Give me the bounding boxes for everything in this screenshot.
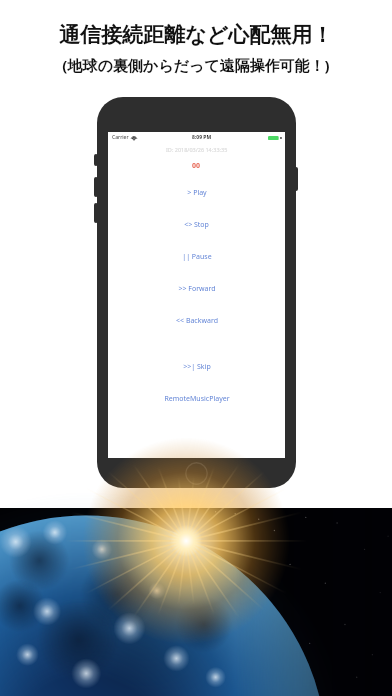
staticText: ID: 2018/03/26 14:33:35 xyxy=(166,146,228,153)
staticText: >> Forward xyxy=(178,284,216,294)
button[interactable]: << Backward xyxy=(108,314,285,328)
button[interactable]: >> Forward xyxy=(108,282,285,296)
staticText: >>| Skip xyxy=(183,362,211,372)
staticText: 通信接続距離など心配無用！ xyxy=(59,22,333,48)
staticText: RemoteMusicPlayer xyxy=(164,394,230,404)
staticText: Carrier xyxy=(112,134,129,141)
staticText: <> Stop xyxy=(184,220,209,230)
staticText: 00 xyxy=(192,161,201,171)
staticText: || Pause xyxy=(182,252,212,262)
staticText: (地球の裏側からだって遠隔操作可能！) xyxy=(62,55,330,75)
button[interactable]: <> Stop xyxy=(108,218,285,232)
staticText: 8:09 PM xyxy=(192,134,212,141)
button[interactable]: Home xyxy=(185,462,208,485)
button[interactable]: RemoteMusicPlayer xyxy=(108,392,285,406)
button[interactable]: || Pause xyxy=(108,250,285,264)
staticText: > Play xyxy=(187,188,207,198)
button[interactable]: > Play xyxy=(108,186,285,200)
staticText: << Backward xyxy=(176,316,218,326)
button[interactable]: >>| Skip xyxy=(108,360,285,374)
